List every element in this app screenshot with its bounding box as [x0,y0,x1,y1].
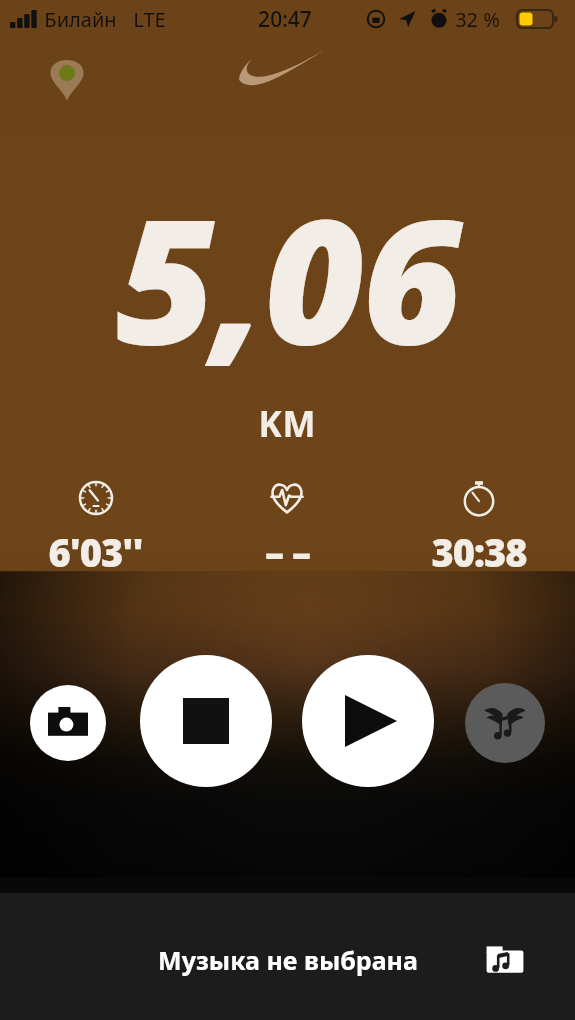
button[interactable]: Stop [140,655,272,787]
button[interactable]: Music library [482,937,528,983]
button[interactable]: Resume [302,655,434,787]
button[interactable]: Camera [30,685,106,761]
staticText: 6'03'' [48,526,143,578]
staticText: 5,06 [116,160,460,394]
button[interactable]: Location [44,56,90,102]
staticText: LTE [133,6,166,33]
staticText: Билайн [44,6,117,33]
button[interactable]: Duration [383,478,575,578]
staticText: 32 % [455,6,500,33]
staticText: Музыка не выбрана [158,943,418,977]
button[interactable]: Music [465,683,545,763]
staticText: 20:47 [258,5,312,34]
staticText: KM [258,400,317,448]
staticText: – – [265,526,310,578]
button[interactable]: Average pace [0,478,191,578]
button[interactable]: Музыка не выбрана [0,893,575,1020]
button[interactable]: Heart rate [191,478,383,578]
staticText: 30:38 [431,526,527,578]
